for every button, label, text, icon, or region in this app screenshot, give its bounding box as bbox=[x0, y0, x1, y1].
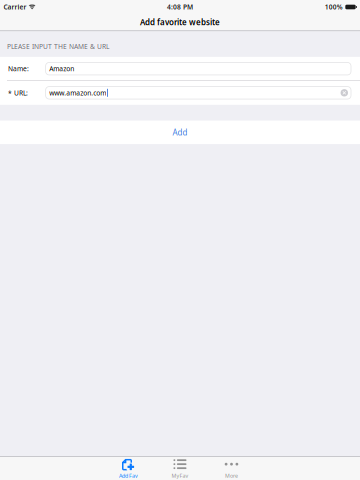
button[interactable]: MyFav bbox=[154, 457, 206, 480]
staticText: More bbox=[225, 472, 238, 479]
staticText: MyFav bbox=[171, 472, 188, 479]
staticText: * URL: bbox=[8, 88, 28, 97]
staticText: www.amazon.com bbox=[49, 88, 106, 97]
button[interactable]: Add Fav bbox=[103, 457, 154, 480]
staticText: Carrier bbox=[3, 3, 26, 11]
staticText: Amazon bbox=[49, 64, 74, 73]
staticText: 4:08 PM bbox=[167, 3, 193, 11]
staticText: 100% bbox=[325, 3, 343, 11]
button[interactable]: More bbox=[206, 457, 257, 480]
staticText: Add bbox=[172, 127, 187, 138]
staticText: Name: bbox=[8, 64, 29, 73]
staticText: PLEASE INPUT THE NAME & URL bbox=[7, 42, 109, 51]
staticText: Add favorite website bbox=[140, 17, 220, 27]
button[interactable]: * URL: bbox=[0, 81, 360, 105]
button[interactable]: Add bbox=[0, 121, 360, 144]
button[interactable]: Name: bbox=[0, 57, 360, 80]
staticText: Add Fav bbox=[119, 472, 138, 479]
